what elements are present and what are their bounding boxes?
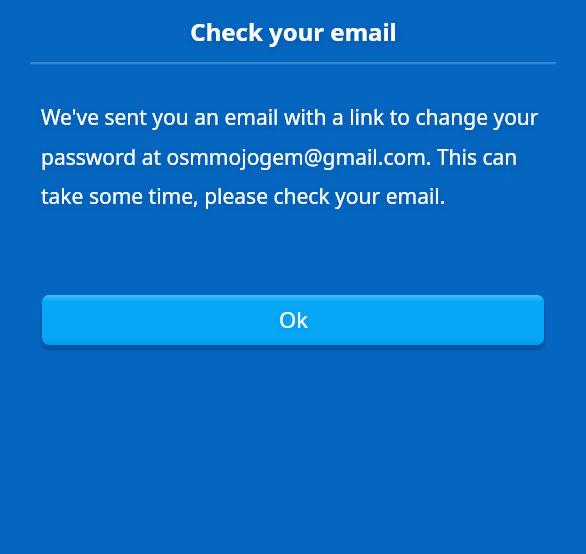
staticText: We've sent you an email with a link to c… (41, 103, 556, 210)
staticText: Ok (279, 304, 308, 334)
staticText: Check your email (190, 15, 397, 48)
button[interactable]: Ok (42, 295, 544, 345)
